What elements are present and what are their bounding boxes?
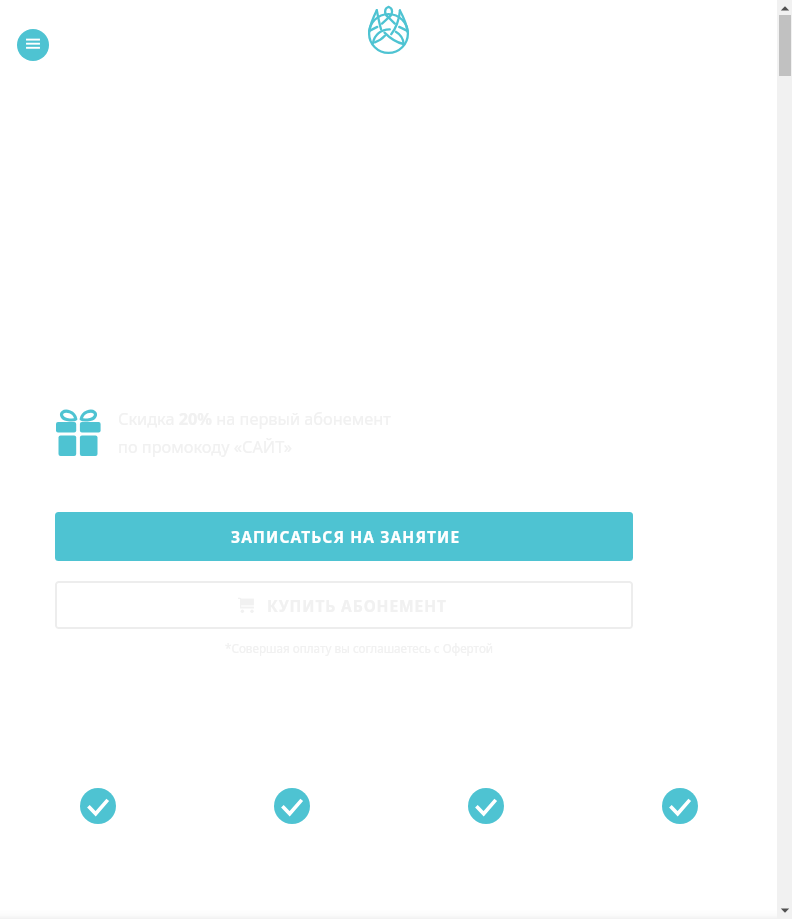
button[interactable]: Feature included xyxy=(468,788,504,824)
button[interactable]: ЗАПИСАТЬСЯ НА ЗАНЯТИЕ xyxy=(55,512,633,561)
button[interactable]: Feature included xyxy=(80,788,116,824)
button[interactable]: КУПИТЬ АБОНЕМЕНТ xyxy=(55,581,633,629)
staticText: КУПИТЬ АБОНЕМЕНТ xyxy=(267,595,447,616)
staticText: по промокоду «САЙТ» xyxy=(118,436,293,458)
staticText: *Совершая оплату вы соглашаетесь с Оферт… xyxy=(225,640,494,656)
button[interactable]: Feature included xyxy=(274,788,310,824)
staticText: ЗАПИСАТЬСЯ НА ЗАНЯТИЕ xyxy=(231,526,461,547)
button[interactable]: Feature included xyxy=(662,788,698,824)
staticText: Скидка 20% на первый абонемент xyxy=(118,408,391,430)
button[interactable]: Menu xyxy=(17,29,49,61)
